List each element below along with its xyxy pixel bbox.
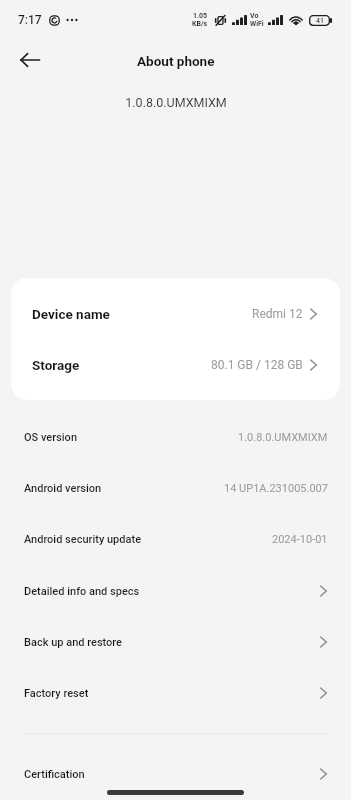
- staticText: Vo: [250, 12, 259, 20]
- staticText: Redmi 12: [252, 307, 303, 321]
- button[interactable]: Certification: [0, 748, 351, 800]
- button[interactable]: OS version: [0, 411, 351, 463]
- staticText: 1.0.8.0.UMXMIXM: [125, 95, 227, 110]
- button[interactable]: Back: [12, 42, 48, 78]
- button[interactable]: Detailed info and specs: [0, 565, 351, 617]
- button[interactable]: Factory reset: [0, 667, 351, 719]
- staticText: 7:17: [18, 13, 42, 27]
- staticText: Device name: [32, 306, 110, 322]
- button[interactable]: Back up and restore: [0, 616, 351, 668]
- staticText: Android version: [24, 482, 102, 495]
- button[interactable]: Android security update: [0, 513, 351, 565]
- staticText: 14 UP1A.231005.007: [224, 482, 328, 495]
- button[interactable]: Storage: [11, 340, 340, 390]
- staticText: 1.0.8.0.UMXMIXM: [238, 431, 328, 444]
- staticText: Detailed info and specs: [24, 585, 140, 598]
- staticText: Storage: [32, 357, 80, 373]
- staticText: 1.05: [193, 12, 208, 20]
- staticText: About phone: [137, 53, 215, 69]
- staticText: KB/s: [192, 20, 208, 28]
- staticText: 2024-10-01: [272, 533, 328, 546]
- button[interactable]: Device name: [11, 288, 340, 340]
- staticText: Android security update: [24, 533, 142, 546]
- staticText: OS version: [24, 431, 78, 444]
- staticText: Factory reset: [24, 687, 89, 700]
- staticText: WiFi: [250, 20, 264, 28]
- staticText: 41: [316, 17, 324, 25]
- staticText: Back up and restore: [24, 636, 123, 649]
- staticText: 80.1 GB / 128 GB: [211, 358, 303, 372]
- staticText: Certification: [24, 768, 85, 781]
- button[interactable]: Android version: [0, 462, 351, 514]
